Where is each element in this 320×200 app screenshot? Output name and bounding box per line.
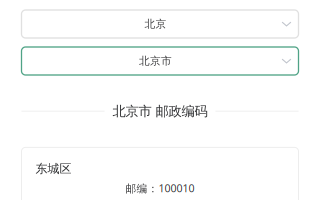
button[interactable]: 北京: [21, 10, 298, 38]
staticText: 北京市 邮政编码: [112, 103, 207, 119]
staticText: 东城区: [35, 161, 71, 176]
button[interactable]: 北京市: [21, 47, 298, 75]
staticText: 北京: [144, 17, 166, 30]
staticText: 邮编：100010: [125, 181, 194, 195]
staticText: 北京市: [139, 54, 172, 67]
